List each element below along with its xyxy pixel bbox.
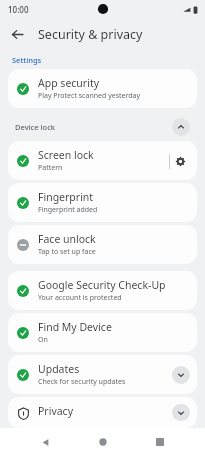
button[interactable]: Home: [91, 430, 115, 454]
staticText: On: [38, 335, 48, 345]
button[interactable]: Updates: [8, 355, 197, 394]
button[interactable]: App security: [8, 69, 197, 108]
staticText: Tap to set up face: [38, 247, 96, 257]
button[interactable]: Expand: [172, 404, 190, 421]
button[interactable]: Face unlock: [8, 225, 197, 264]
button[interactable]: Screen lock: [8, 141, 197, 180]
staticText: Fingerprint: [38, 190, 94, 204]
staticText: Check for security updates: [38, 377, 126, 387]
button[interactable]: Google Security Check-Up: [8, 271, 197, 310]
staticText: Security & privacy: [38, 26, 143, 43]
staticText: Pattern: [38, 163, 63, 173]
button[interactable]: Device lock: [8, 115, 197, 139]
staticText: Updates: [38, 362, 80, 376]
button[interactable]: Privacy: [8, 397, 197, 428]
staticText: Fingerprint added: [38, 205, 98, 215]
button[interactable]: Back: [4, 21, 30, 47]
staticText: Play Protect scanned yesterday: [38, 91, 141, 101]
staticText: App security: [38, 76, 100, 90]
staticText: Device lock: [15, 122, 172, 132]
staticText: Privacy: [38, 404, 74, 418]
staticText: Google Security Check-Up: [38, 278, 166, 292]
button[interactable]: Screen lock settings: [170, 151, 190, 171]
staticText: Find My Device: [38, 320, 112, 334]
staticText: 10:00: [8, 4, 29, 15]
staticText: Face unlock: [38, 232, 96, 246]
staticText: Screen lock: [38, 148, 94, 162]
button[interactable]: Fingerprint: [8, 183, 197, 222]
button[interactable]: Expand: [172, 366, 190, 384]
button[interactable]: Find My Device: [8, 313, 197, 352]
staticText: Settings: [12, 55, 42, 65]
staticText: Your account is protected: [38, 293, 122, 303]
button[interactable]: Collapse: [172, 118, 190, 136]
button[interactable]: Recent apps: [148, 430, 172, 454]
button[interactable]: Back: [33, 430, 57, 454]
